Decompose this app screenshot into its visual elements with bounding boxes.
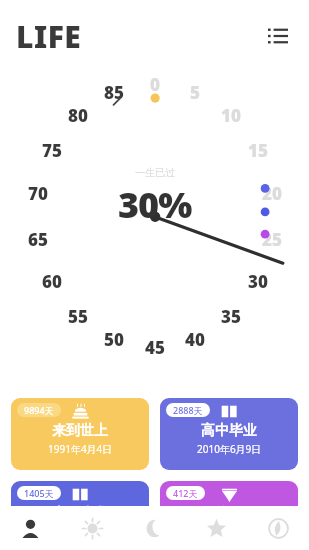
- button[interactable]: 9894天: [11, 398, 149, 470]
- staticText: 20: [262, 182, 282, 205]
- button[interactable]: World: [247, 506, 309, 550]
- button[interactable]: Day: [61, 506, 123, 550]
- staticText: 85: [104, 81, 124, 104]
- staticText: 领证日: [208, 505, 250, 523]
- staticText: 70: [28, 182, 48, 205]
- staticText: 1991年4月4日: [48, 442, 113, 456]
- staticText: 来到世上: [52, 422, 108, 440]
- staticText: 1405天: [24, 487, 54, 499]
- staticText: 80: [68, 104, 88, 127]
- staticText: 45: [145, 336, 165, 359]
- staticText: 2017年3月8日: [197, 525, 262, 539]
- staticText: 0: [150, 73, 160, 96]
- staticText: 25: [262, 228, 282, 251]
- button[interactable]: List: [261, 19, 295, 53]
- staticText: 15: [248, 139, 268, 162]
- button[interactable]: Night: [123, 506, 185, 550]
- staticText: 9894天: [24, 404, 54, 416]
- button[interactable]: 1405天: [11, 481, 149, 550]
- staticText: 50: [104, 328, 124, 351]
- staticText: 一生已过: [135, 166, 175, 179]
- staticText: LIFE: [16, 16, 82, 57]
- staticText: 30: [248, 270, 268, 293]
- button[interactable]: 2888天: [160, 398, 298, 470]
- staticText: 高中毕业: [201, 422, 257, 440]
- staticText: 60: [42, 270, 62, 293]
- button[interactable]: Favorites: [185, 506, 247, 550]
- staticText: 5: [190, 81, 200, 104]
- staticText: 65: [28, 228, 48, 251]
- staticText: 30%: [118, 180, 192, 229]
- staticText: 2010年6月9日: [197, 442, 262, 456]
- staticText: 2014年6月20日: [45, 525, 116, 539]
- staticText: 2888天: [173, 404, 203, 416]
- button[interactable]: 412天: [160, 481, 298, 550]
- staticText: 55: [68, 305, 88, 328]
- staticText: 40: [185, 328, 205, 351]
- staticText: 10: [221, 104, 241, 127]
- staticText: 35: [221, 305, 241, 328]
- button[interactable]: Profile: [0, 506, 61, 550]
- staticText: 大学毕业: [52, 505, 108, 523]
- staticText: 75: [42, 139, 62, 162]
- staticText: 412天: [173, 487, 198, 499]
